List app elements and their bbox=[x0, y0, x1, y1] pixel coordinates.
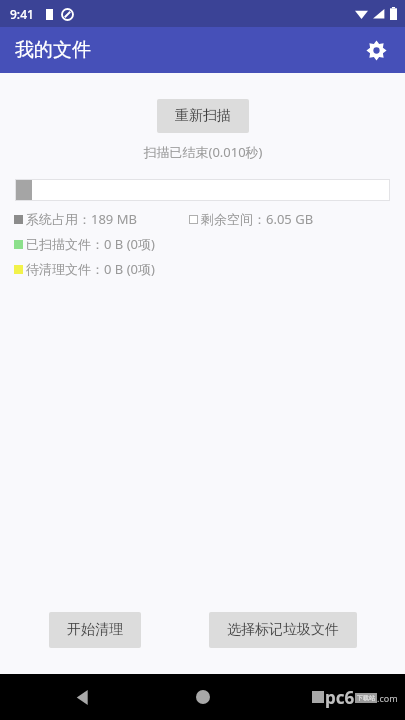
staticText: 开始清理 bbox=[67, 621, 123, 639]
button[interactable]: Back bbox=[66, 680, 100, 714]
staticText: 0 B (0项) bbox=[104, 235, 155, 253]
staticText: 已扫描文件： bbox=[26, 236, 104, 252]
button[interactable]: Settings bbox=[357, 31, 395, 69]
staticText: 我的文件 bbox=[15, 38, 91, 62]
button[interactable]: 选择标记垃圾文件 bbox=[209, 612, 357, 648]
staticText: 重新扫描 bbox=[175, 107, 231, 125]
button[interactable]: 开始清理 bbox=[49, 612, 141, 648]
staticText: 选择标记垃圾文件 bbox=[227, 621, 339, 639]
staticText: pc6 bbox=[325, 686, 355, 709]
staticText: 剩余空间： bbox=[201, 211, 266, 227]
staticText: .com bbox=[377, 692, 398, 704]
button[interactable]: 重新扫描 bbox=[157, 99, 249, 133]
staticText: 待清理文件： bbox=[26, 261, 104, 277]
staticText: 系统占用： bbox=[26, 211, 91, 227]
staticText: 6.05 GB bbox=[266, 210, 314, 228]
button[interactable]: Home bbox=[186, 680, 220, 714]
staticText: 下载站 bbox=[357, 694, 375, 702]
staticText: 0 B (0项) bbox=[104, 260, 155, 278]
button[interactable]: Recent apps bbox=[301, 680, 335, 714]
staticText: 扫描已结束(0.010秒) bbox=[143, 143, 263, 161]
staticText: 189 MB bbox=[91, 210, 137, 228]
staticText: 9:41 bbox=[10, 6, 34, 22]
